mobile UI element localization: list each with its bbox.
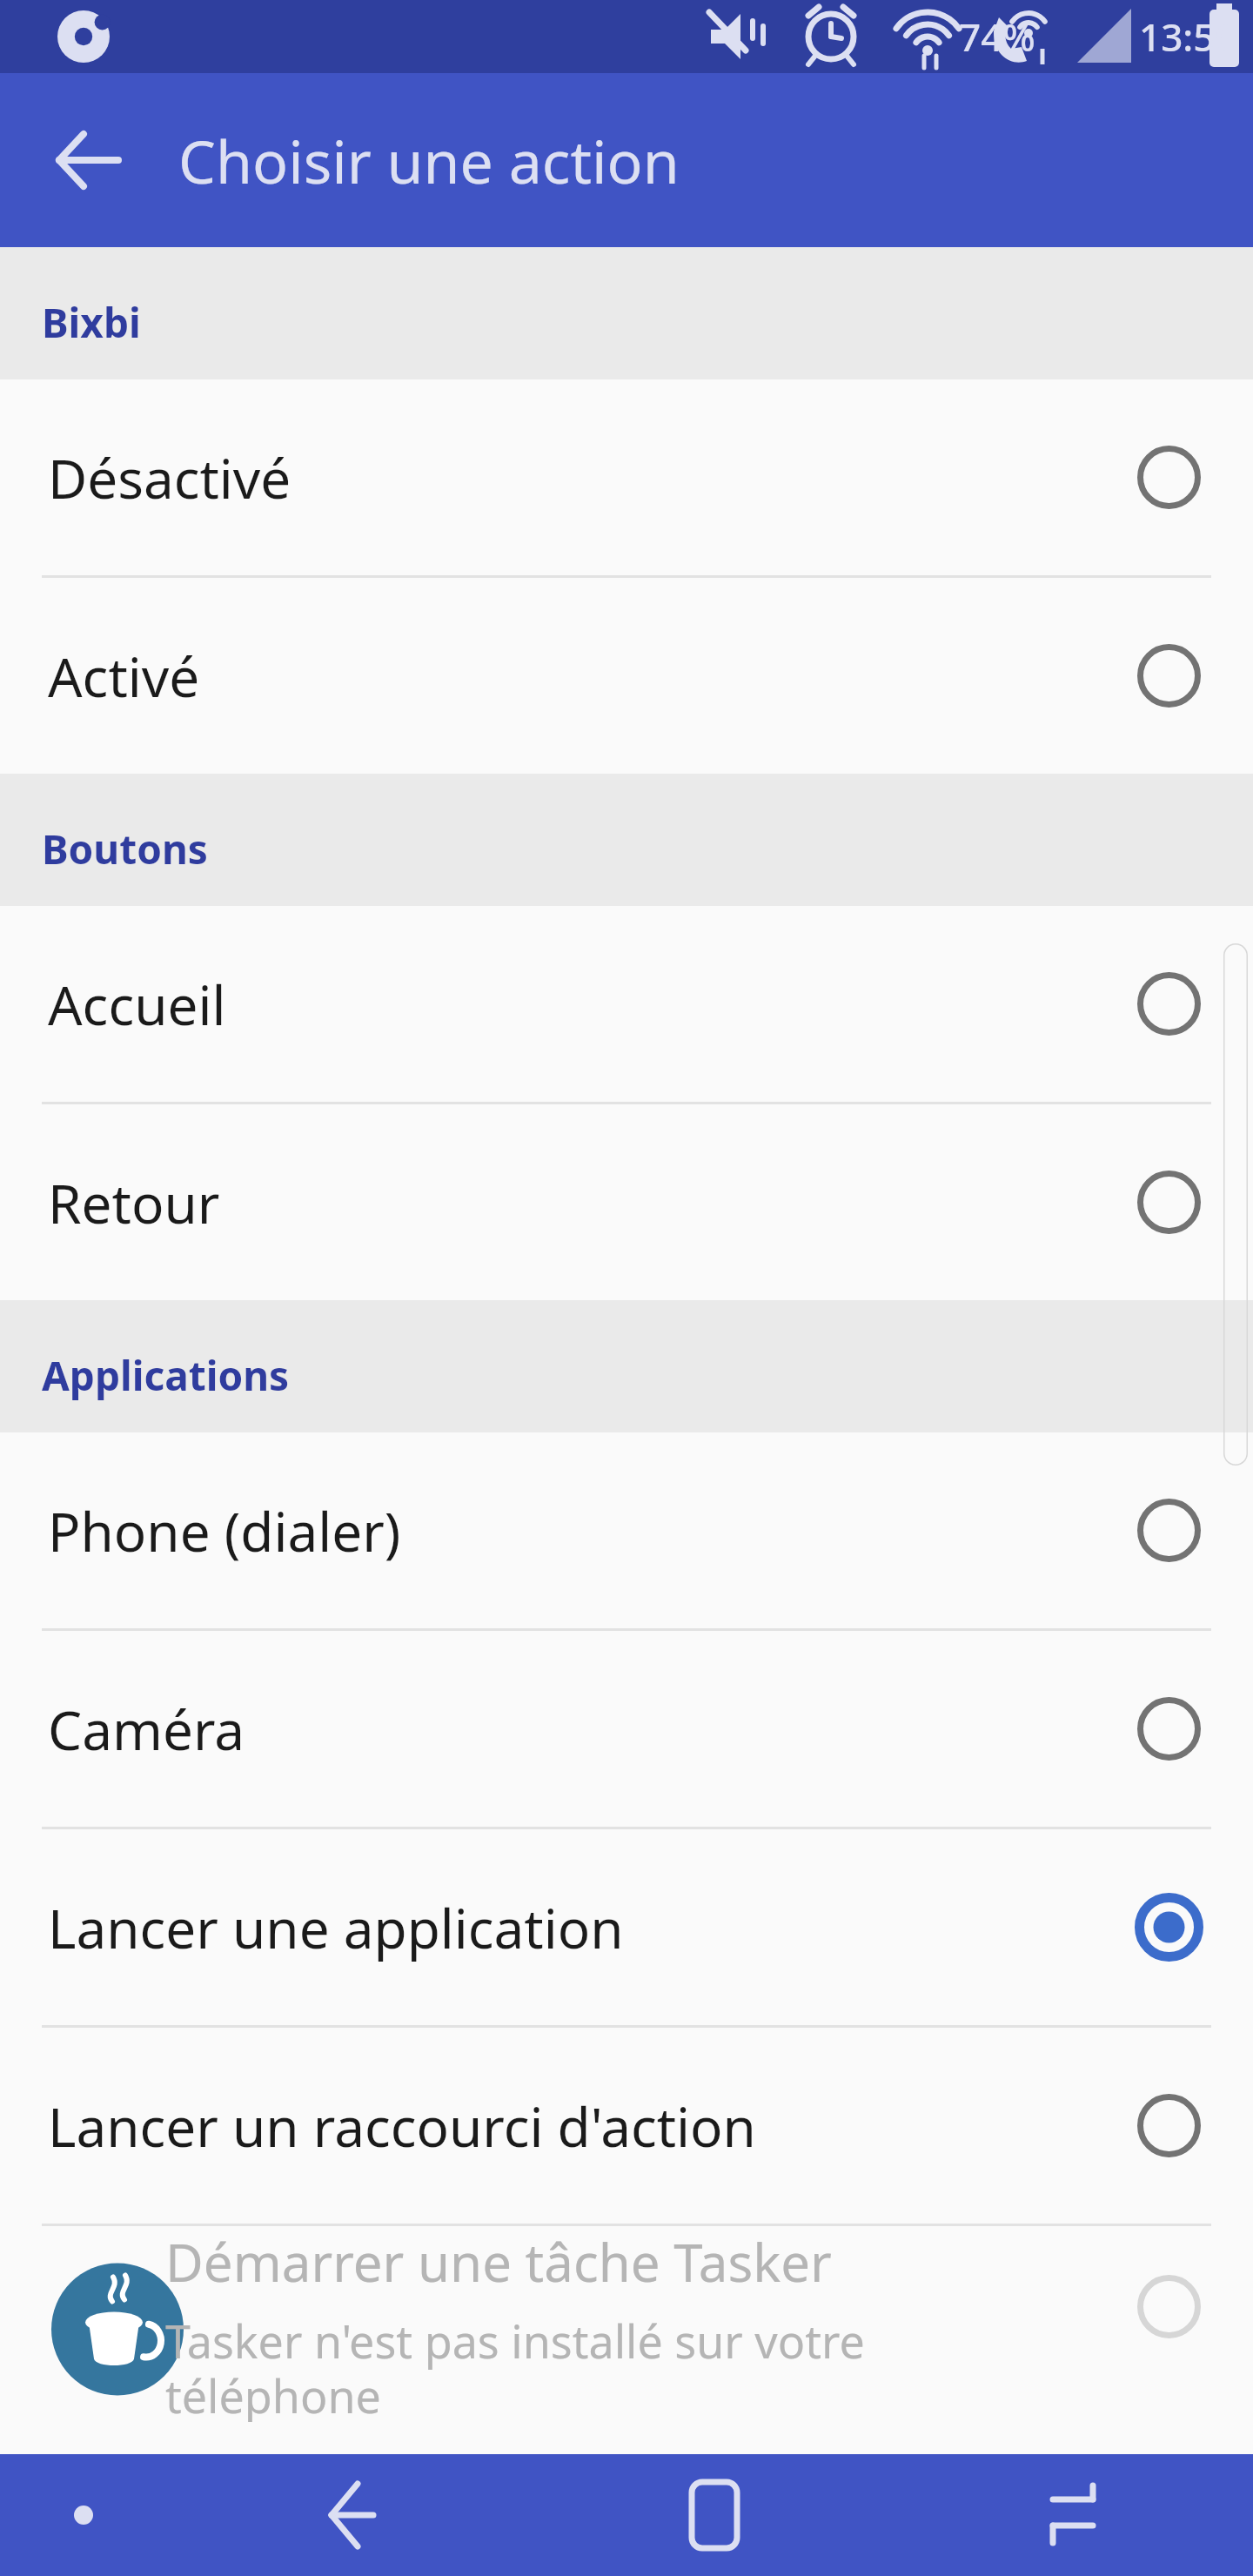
staticText: 74% — [959, 10, 1035, 63]
button[interactable]: Démarrer une tâche Tasker — [0, 2226, 1253, 2422]
button[interactable]: Lancer un raccourci d'action — [0, 2028, 1253, 2224]
staticText: Retour — [48, 1166, 1075, 1239]
button[interactable]: Accueil — [0, 906, 1253, 1102]
staticText: Lancer une application — [48, 1891, 1075, 1964]
button[interactable]: Back — [174, 2454, 534, 2576]
button[interactable]: Home — [534, 2454, 894, 2576]
staticText: Applications — [42, 1348, 290, 1403]
staticText: Désactivé — [48, 441, 1075, 514]
button[interactable]: Lancer une application — [0, 1829, 1253, 2025]
button[interactable]: Back — [35, 106, 143, 214]
staticText: Phone (dialer) — [48, 1494, 1075, 1567]
staticText: Bixbi — [42, 295, 141, 350]
button[interactable]: Retour — [0, 1104, 1253, 1300]
button[interactable]: Phone (dialer) — [0, 1432, 1253, 1628]
staticText: Démarrer une tâche Tasker — [165, 2226, 832, 2298]
button[interactable]: Désactivé — [0, 379, 1253, 575]
staticText: Activé — [48, 640, 1075, 713]
button[interactable]: Caméra — [0, 1631, 1253, 1827]
staticText: Choisir une action — [178, 120, 680, 201]
staticText: Lancer un raccourci d'action — [48, 2090, 1075, 2163]
staticText: Tasker n'est pas installé sur votre télé… — [165, 2310, 865, 2422]
staticText: Boutons — [42, 822, 208, 876]
button[interactable]: Recents — [894, 2454, 1253, 2576]
staticText: 13:50 — [1139, 10, 1237, 63]
staticText: Caméra — [48, 1693, 1075, 1766]
staticText: Accueil — [48, 968, 1075, 1041]
button[interactable]: Activé — [0, 578, 1253, 774]
